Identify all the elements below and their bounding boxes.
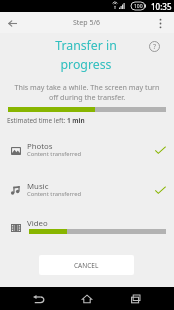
staticText: ? (153, 42, 157, 52)
staticText: This may take a while. The screen may tu… (9, 82, 165, 102)
button[interactable]: Back (4, 15, 20, 31)
button[interactable]: Back (27, 288, 49, 310)
button[interactable]: CANCEL (39, 255, 134, 275)
button[interactable]: Recents (125, 288, 147, 310)
staticText: CANCEL (74, 261, 99, 270)
button[interactable]: Help (146, 38, 163, 55)
staticText: 100 (134, 3, 143, 10)
staticText: Music (27, 181, 49, 192)
button[interactable]: More options (152, 15, 168, 31)
staticText: 10:35 (151, 1, 172, 12)
staticText: Content transferred (27, 190, 82, 198)
staticText: Step 5/6 (73, 18, 101, 28)
staticText: Content transferred (27, 150, 82, 158)
button[interactable]: Music (0, 180, 174, 216)
staticText: Photos (27, 141, 53, 152)
button[interactable]: Photos (0, 140, 174, 176)
button[interactable]: Home (76, 288, 98, 310)
staticText: Video (27, 218, 48, 229)
staticText: Transfer in progress (38, 37, 134, 72)
staticText: Estimated time left: 1 min (7, 116, 85, 125)
button[interactable]: Video (0, 217, 174, 253)
